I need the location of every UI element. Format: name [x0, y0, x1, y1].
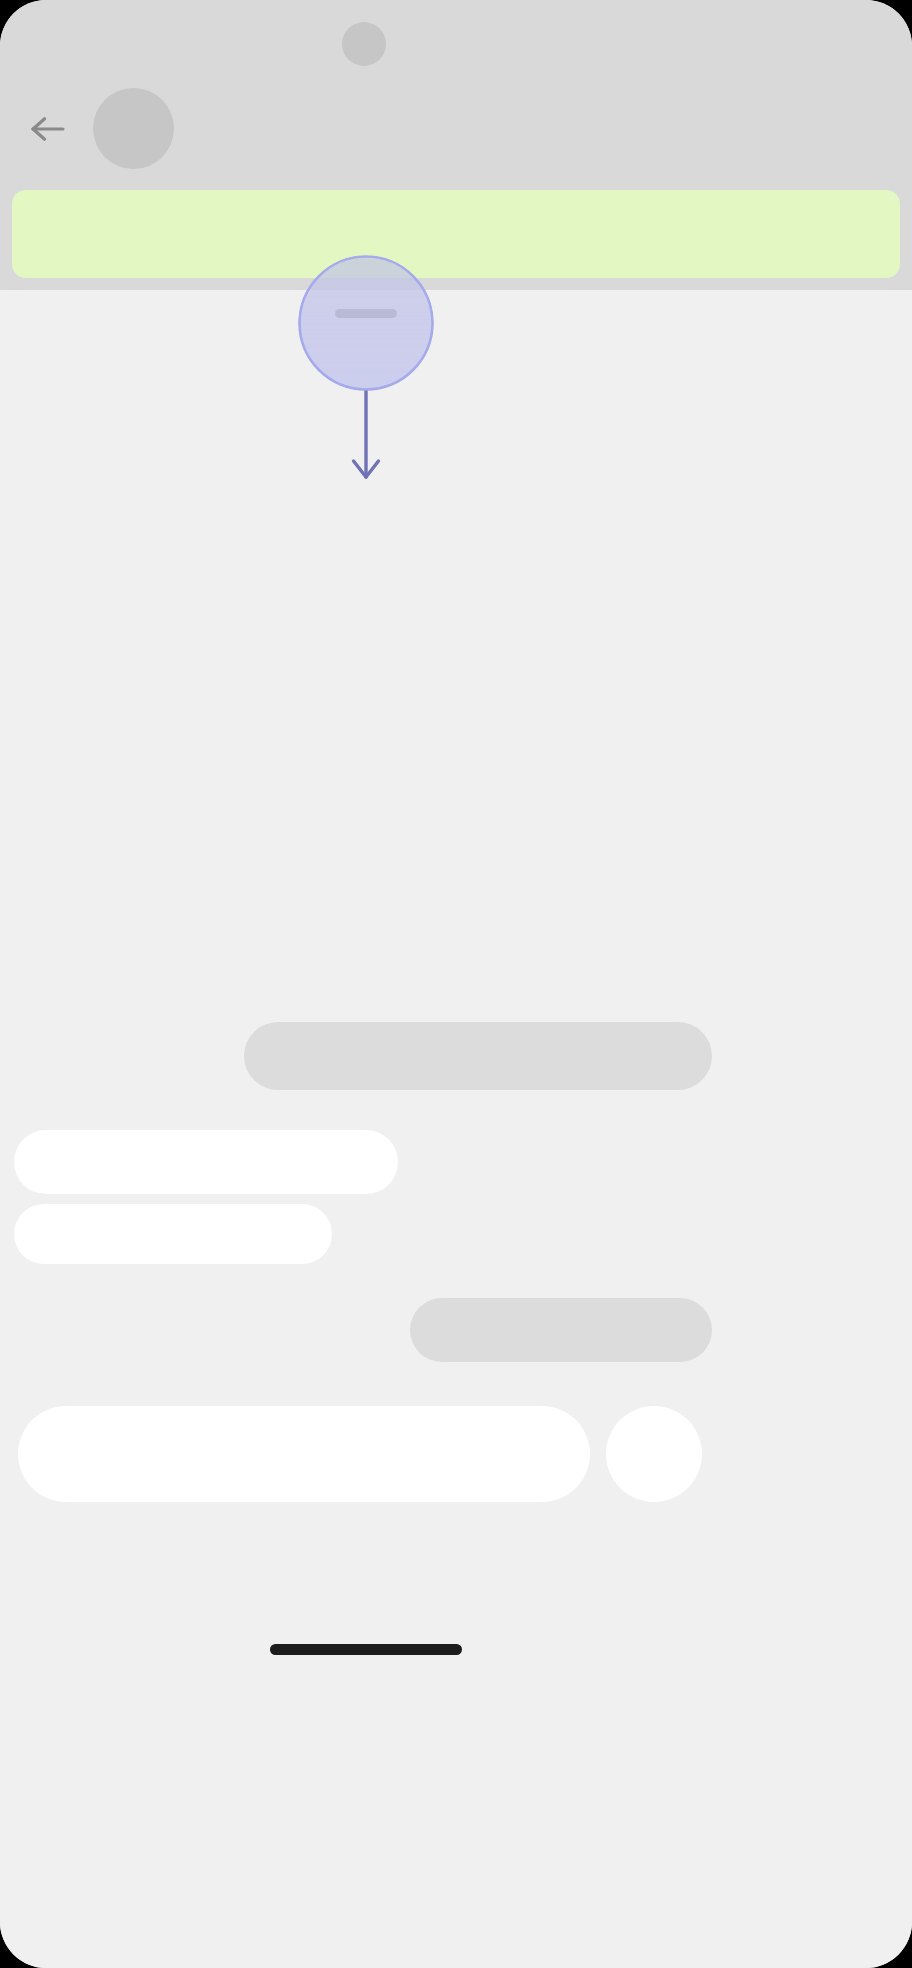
- button[interactable]: [410, 1298, 712, 1362]
- button[interactable]: Drag handle: [298, 255, 434, 391]
- button[interactable]: Profile: [93, 88, 174, 169]
- button[interactable]: [12, 190, 900, 278]
- button[interactable]: Back: [18, 99, 78, 159]
- button[interactable]: [244, 1022, 712, 1090]
- button[interactable]: Send: [606, 1406, 702, 1502]
